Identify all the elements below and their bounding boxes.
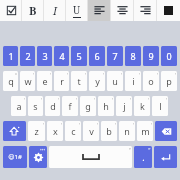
- button[interactable]: k: [134, 96, 150, 116]
- button[interactable]: u: [107, 71, 123, 91]
- staticText: ‘: [79, 122, 80, 128]
- staticText: U: [73, 3, 81, 17]
- button[interactable]: Backspace: [155, 121, 177, 141]
- button[interactable]: x: [47, 121, 63, 141]
- button[interactable]: a: [11, 96, 26, 116]
- staticText: 6: [94, 50, 100, 62]
- staticText: ‘‘‘: [148, 147, 151, 153]
- button[interactable]: g: [80, 96, 96, 116]
- button[interactable]: f: [62, 96, 78, 116]
- button[interactable]: Align left: [88, 0, 111, 21]
- button[interactable]: r: [54, 71, 69, 91]
- staticText: g: [85, 100, 91, 112]
- staticText: j: [123, 100, 126, 112]
- button[interactable]: Bold: [22, 0, 44, 21]
- staticText: ‘: [41, 97, 42, 103]
- button[interactable]: e: [37, 71, 52, 91]
- button[interactable]: .: [134, 146, 152, 168]
- button[interactable]: n: [119, 121, 135, 141]
- staticText: c: [71, 125, 76, 137]
- button[interactable]: b: [101, 121, 117, 141]
- button[interactable]: 0: [161, 46, 177, 66]
- staticText: p: [166, 75, 172, 87]
- staticText: .: [142, 151, 145, 163]
- staticText: x: [53, 125, 58, 137]
- button[interactable]: Settings: [29, 146, 47, 168]
- button[interactable]: w: [20, 71, 35, 91]
- staticText: 5: [76, 50, 82, 62]
- button[interactable]: 8: [125, 46, 141, 66]
- staticText: v: [89, 125, 94, 137]
- button[interactable]: ☺1#: [3, 146, 27, 168]
- button[interactable]: z: [28, 121, 45, 141]
- staticText: ‘: [33, 72, 34, 78]
- staticText: ‘: [50, 72, 51, 78]
- staticText: z: [34, 125, 39, 137]
- staticText: i: [132, 75, 135, 87]
- button[interactable]: Align center: [111, 0, 134, 21]
- staticText: 1: [8, 50, 14, 62]
- staticText: r: [60, 75, 64, 87]
- button[interactable]: m: [137, 121, 153, 141]
- staticText: ‘: [43, 122, 44, 128]
- staticText: ‘: [94, 97, 95, 103]
- staticText: ‘: [133, 122, 134, 128]
- button[interactable]: d: [45, 96, 60, 116]
- button[interactable]: o: [143, 71, 159, 91]
- staticText: ☺1#: [8, 153, 22, 161]
- button[interactable]: Underline: [66, 0, 88, 21]
- button[interactable]: 7: [107, 46, 123, 66]
- staticText: l: [159, 100, 162, 112]
- staticText: s: [33, 100, 38, 112]
- staticText: 8: [130, 50, 136, 62]
- button[interactable]: l: [152, 96, 168, 116]
- button[interactable]: 5: [71, 46, 87, 66]
- button[interactable]: 9: [143, 46, 159, 66]
- staticText: ‘: [76, 97, 77, 103]
- button[interactable]: v: [83, 121, 99, 141]
- staticText: ‘: [103, 72, 104, 78]
- staticText: 0: [166, 50, 172, 62]
- button[interactable]: ‘‘: [49, 146, 132, 168]
- staticText: a: [16, 100, 22, 112]
- staticText: u: [112, 75, 118, 87]
- staticText: ‘: [85, 72, 86, 78]
- staticText: o: [148, 75, 154, 87]
- staticText: °: [15, 72, 17, 78]
- button[interactable]: Checklist: [0, 0, 22, 21]
- button[interactable]: h: [98, 96, 114, 116]
- staticText: 2: [25, 50, 31, 62]
- staticText: 4: [59, 50, 65, 62]
- staticText: ‘: [97, 122, 98, 128]
- button[interactable]: j: [116, 96, 132, 116]
- button[interactable]: 6: [89, 46, 105, 66]
- staticText: ‘: [112, 97, 113, 103]
- button[interactable]: t: [71, 71, 87, 91]
- staticText: ‘: [24, 97, 25, 103]
- button[interactable]: y: [89, 71, 105, 91]
- button[interactable]: c: [65, 121, 81, 141]
- button[interactable]: 4: [54, 46, 69, 66]
- button[interactable]: Italic: [44, 0, 66, 21]
- staticText: d: [50, 100, 56, 112]
- button[interactable]: 3: [37, 46, 52, 66]
- button[interactable]: s: [28, 96, 43, 116]
- staticText: b: [106, 125, 112, 137]
- staticText: ‘‘: [129, 147, 131, 153]
- button[interactable]: q: [3, 71, 18, 91]
- button[interactable]: Enter: [154, 146, 177, 168]
- staticText: e: [42, 75, 48, 87]
- staticText: q: [8, 75, 14, 87]
- button[interactable]: Text color: [157, 0, 180, 21]
- staticText: 7: [112, 50, 118, 62]
- button[interactable]: p: [161, 71, 177, 91]
- button[interactable]: i: [125, 71, 141, 91]
- button[interactable]: 1: [3, 46, 18, 66]
- button[interactable]: 2: [20, 46, 35, 66]
- staticText: ‘: [115, 122, 116, 128]
- staticText: ‘: [67, 72, 68, 78]
- staticText: ‘: [166, 97, 167, 103]
- button[interactable]: Shift: [3, 121, 26, 141]
- button[interactable]: Align right: [134, 0, 157, 21]
- staticText: •••: [40, 147, 46, 153]
